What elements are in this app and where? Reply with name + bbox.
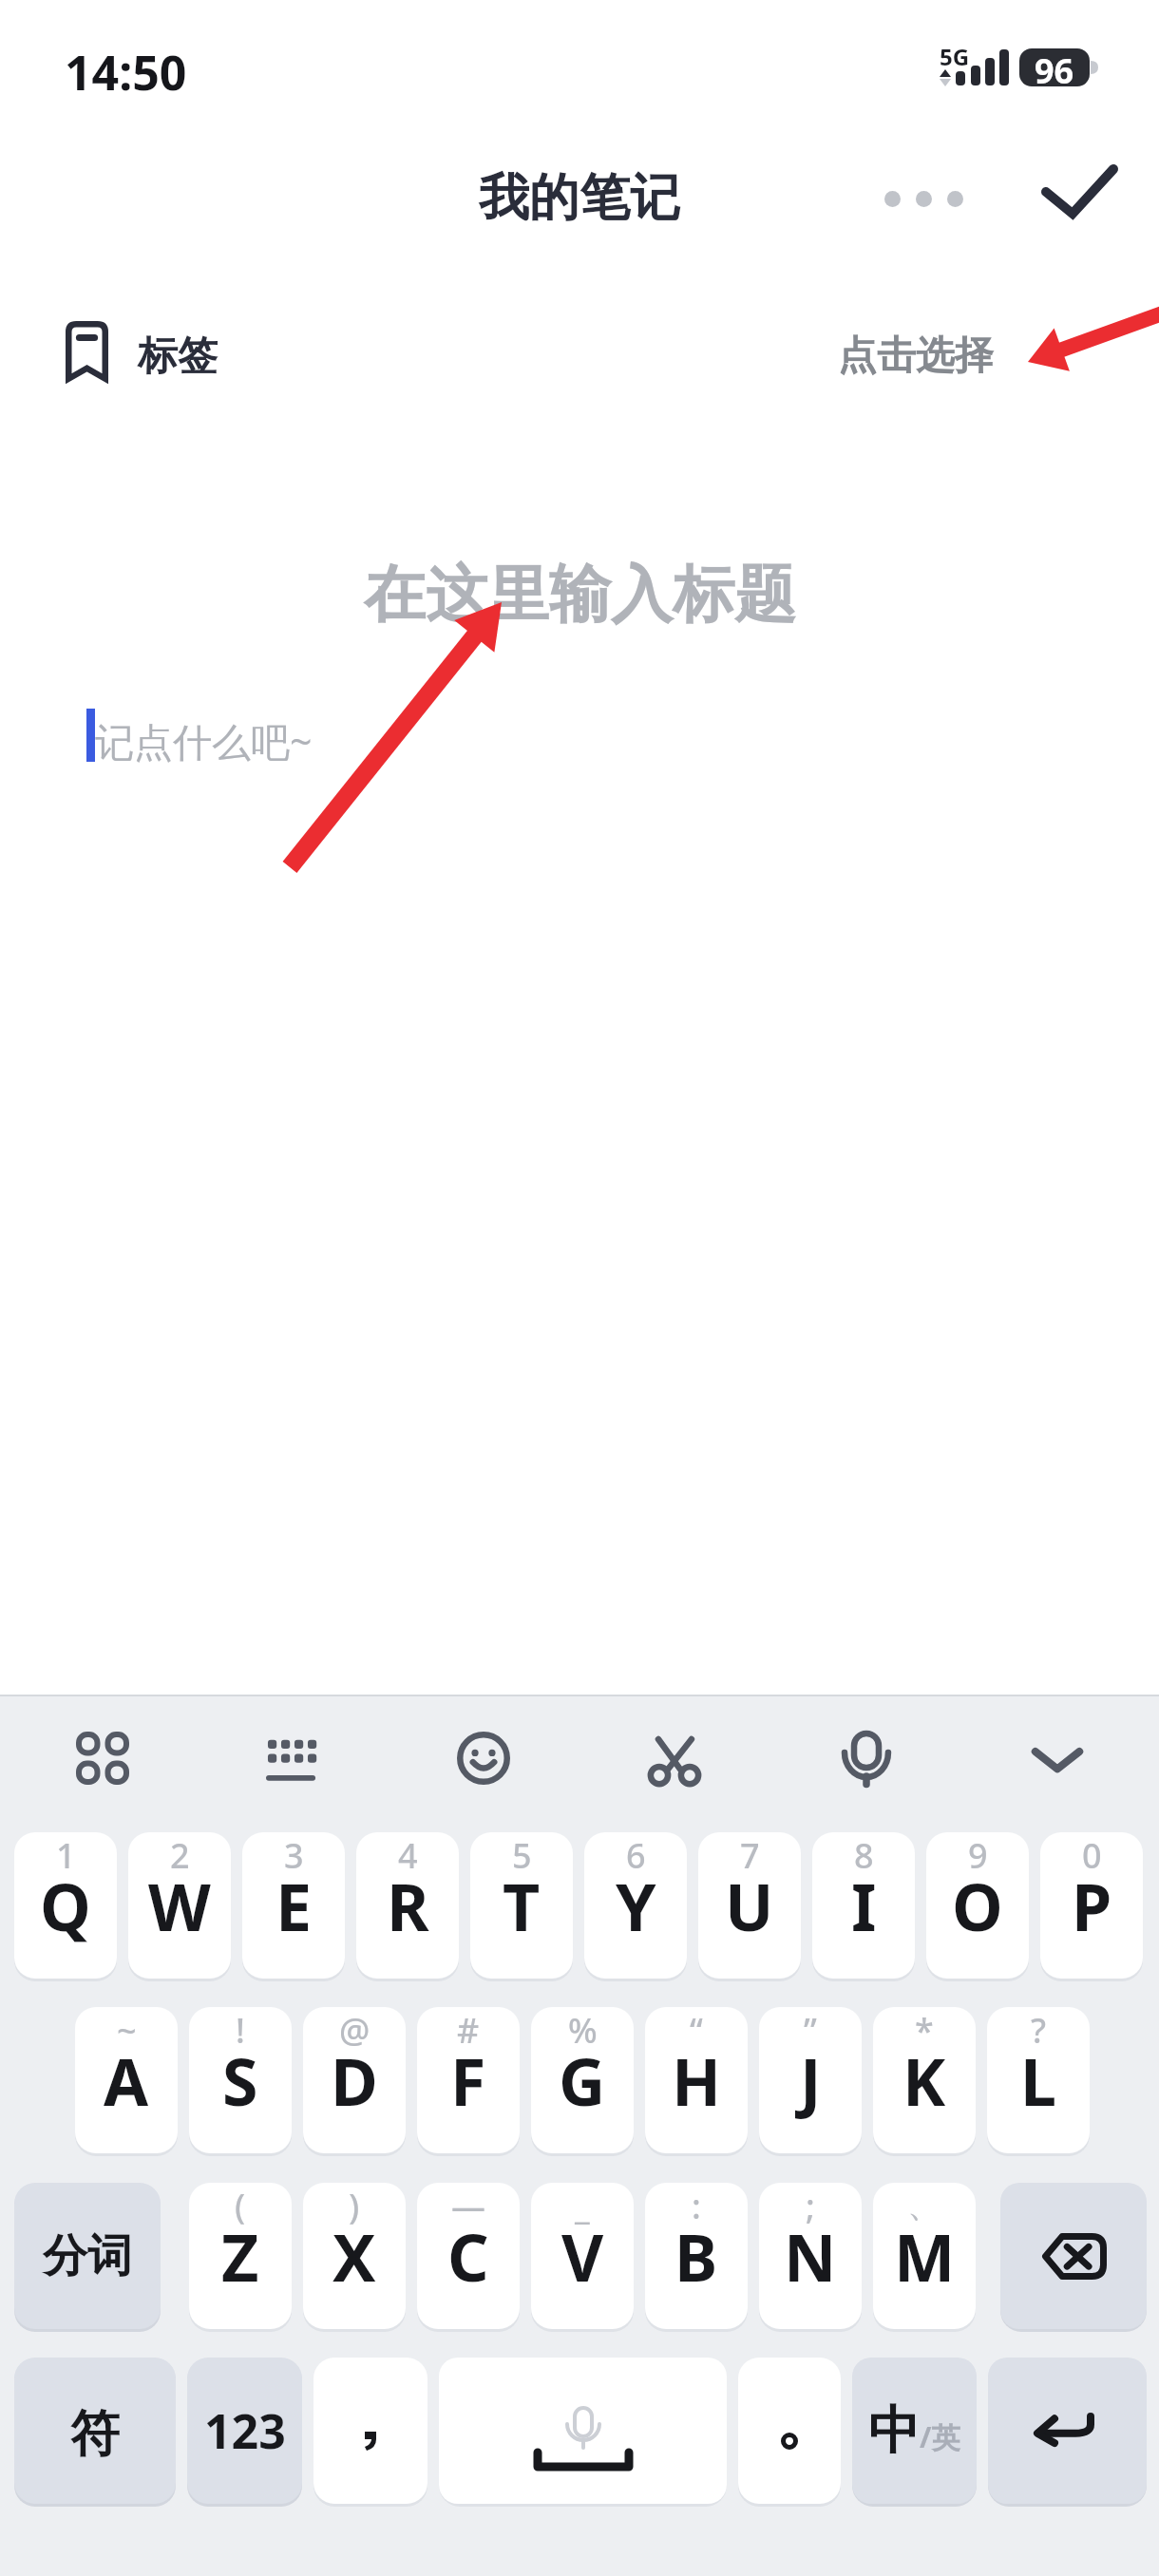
staticText: ( — [235, 2183, 246, 2229]
staticText: 96 — [1035, 48, 1074, 85]
staticText: X — [332, 2212, 376, 2301]
staticText: K — [902, 2036, 946, 2125]
staticText: ! — [236, 2007, 245, 2054]
staticText: * — [915, 2007, 934, 2054]
button[interactable]: 中 — [852, 2358, 977, 2504]
staticText: G — [559, 2036, 606, 2125]
button[interactable]: 0 — [1040, 1832, 1143, 1979]
button[interactable]: * — [873, 2007, 976, 2153]
staticText: Q — [40, 1862, 91, 1950]
button[interactable]: 4 — [356, 1832, 459, 1979]
button[interactable]: 、 — [873, 2183, 976, 2329]
staticText: 1 — [56, 1832, 76, 1879]
button[interactable]: Period — [738, 2358, 841, 2504]
staticText: Z — [221, 2212, 259, 2301]
staticText: R — [387, 1862, 429, 1950]
button[interactable]: Keyboard layouts — [46, 1701, 160, 1815]
staticText: 0 — [1082, 1832, 1102, 1879]
staticText: _ — [575, 2183, 590, 2229]
staticText: 我的笔记 — [479, 166, 680, 230]
button[interactable]: 9 — [926, 1832, 1029, 1979]
button[interactable]: 分词 — [14, 2183, 161, 2329]
staticText: E — [275, 1862, 313, 1950]
staticText: ; — [806, 2183, 815, 2229]
button[interactable]: 1 — [14, 1832, 117, 1979]
button[interactable]: ! — [189, 2007, 292, 2153]
staticText: I — [851, 1862, 877, 1950]
staticText: % — [568, 2007, 598, 2054]
staticText: 6 — [626, 1832, 646, 1879]
button[interactable]: 6 — [584, 1832, 687, 1979]
staticText: 在这里输入标题 — [364, 556, 796, 634]
staticText: O — [952, 1862, 1003, 1950]
button[interactable]: 符 — [14, 2358, 176, 2504]
button[interactable]: _ — [531, 2183, 634, 2329]
button[interactable]: Voice input — [809, 1701, 923, 1815]
staticText: N — [784, 2212, 837, 2301]
staticText: S — [222, 2036, 258, 2125]
button[interactable]: 3 — [242, 1832, 345, 1979]
staticText: 点击选择 — [838, 331, 994, 381]
staticText: J — [800, 2036, 822, 2125]
staticText: 中 — [868, 2398, 920, 2463]
staticText: 符 — [70, 2403, 120, 2466]
button[interactable]: 7 — [698, 1832, 801, 1979]
button[interactable]: Save — [1023, 133, 1137, 253]
button[interactable]: Enter — [988, 2358, 1147, 2504]
button[interactable]: 8 — [812, 1832, 915, 1979]
staticText: @ — [339, 2007, 370, 2054]
button[interactable]: More options — [856, 146, 991, 251]
staticText: 5G — [940, 41, 970, 72]
button[interactable]: Comma — [313, 2358, 427, 2504]
button[interactable]: : — [645, 2183, 748, 2329]
button[interactable]: Emoji — [427, 1701, 541, 1815]
button[interactable]: Keyboard — [236, 1701, 350, 1815]
staticText: 2 — [170, 1832, 190, 1879]
button[interactable]: 2 — [128, 1832, 231, 1979]
button[interactable]: ; — [759, 2183, 862, 2329]
staticText: 8 — [854, 1832, 874, 1879]
staticText: “ — [690, 2007, 703, 2054]
button[interactable]: @ — [303, 2007, 406, 2153]
button[interactable]: ? — [987, 2007, 1090, 2153]
button[interactable]: # — [417, 2007, 520, 2153]
staticText: M — [894, 2212, 956, 2301]
staticText: 123 — [204, 2398, 286, 2463]
staticText: ” — [804, 2007, 817, 2054]
staticText: V — [561, 2212, 604, 2301]
staticText: B — [674, 2212, 718, 2301]
staticText: : — [692, 2183, 701, 2229]
staticText: 标签 — [138, 331, 218, 382]
button[interactable]: “ — [645, 2007, 748, 2153]
button[interactable]: 点击选择 — [838, 331, 994, 381]
staticText: ? — [1031, 2007, 1047, 2054]
staticText: 4 — [398, 1832, 418, 1879]
button[interactable]: ” — [759, 2007, 862, 2153]
button[interactable]: ~ — [75, 2007, 178, 2153]
button[interactable]: Backspace — [1000, 2183, 1147, 2329]
staticText: 5 — [512, 1832, 532, 1879]
button[interactable]: 5 — [470, 1832, 573, 1979]
staticText: L — [1020, 2036, 1057, 2125]
staticText: A — [104, 2036, 149, 2125]
staticText: P — [1072, 1862, 1112, 1950]
button[interactable]: — — [417, 2183, 520, 2329]
button[interactable]: Clipboard — [617, 1701, 731, 1815]
button[interactable]: 标签 — [66, 294, 218, 408]
button[interactable]: Space — [439, 2358, 727, 2504]
staticText: 、 — [907, 2183, 941, 2226]
staticText: 记点什么吧~ — [95, 714, 313, 767]
staticText: U — [725, 1862, 774, 1950]
staticText: 7 — [740, 1832, 760, 1879]
staticText: 分词 — [43, 2228, 132, 2284]
staticText: ) — [349, 2183, 360, 2229]
button[interactable]: ( — [189, 2183, 292, 2329]
button[interactable]: ) — [303, 2183, 406, 2329]
button[interactable]: Hide keyboard — [1000, 1701, 1114, 1815]
staticText: Y — [616, 1862, 656, 1950]
button[interactable]: 123 — [187, 2358, 302, 2504]
staticText: C — [447, 2212, 489, 2301]
staticText: H — [672, 2036, 722, 2125]
staticText: ~ — [117, 2007, 137, 2054]
button[interactable]: % — [531, 2007, 634, 2153]
